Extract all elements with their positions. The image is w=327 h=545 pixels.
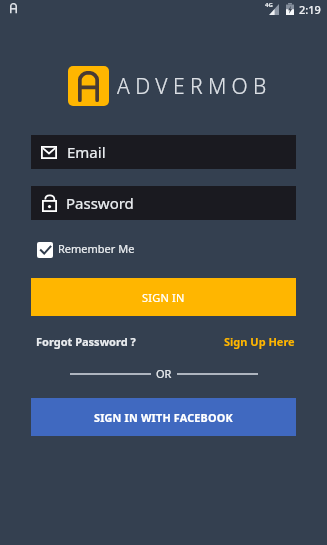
button[interactable]: Remember Me (37, 242, 135, 258)
button[interactable]: Sign Up Here (224, 330, 295, 353)
button[interactable]: Email (31, 135, 296, 169)
staticText: OR (156, 366, 172, 381)
staticText: Email (67, 142, 106, 162)
button[interactable]: Password (31, 186, 296, 220)
staticText: Password (66, 193, 134, 213)
staticText: 4G (265, 1, 273, 9)
button[interactable]: SIGN IN (31, 278, 296, 316)
staticText: 2:19 (299, 2, 321, 17)
other: Battery charging (286, 3, 294, 15)
other: Mobile signal (269, 4, 279, 15)
staticText: ADVERMOB (117, 72, 272, 101)
other: Password (42, 194, 57, 212)
button[interactable]: SIGN IN WITH FACEBOOK (31, 398, 296, 436)
other: Email (41, 146, 57, 159)
button[interactable]: Forgot Password ? (36, 330, 136, 353)
other: Advermob notification (10, 3, 17, 14)
staticText: SIGN IN WITH FACEBOOK (94, 410, 233, 425)
staticText: Forgot Password ? (36, 334, 136, 349)
staticText: Sign Up Here (224, 334, 295, 349)
staticText: SIGN IN (142, 290, 185, 305)
staticText: Remember Me (58, 241, 135, 256)
